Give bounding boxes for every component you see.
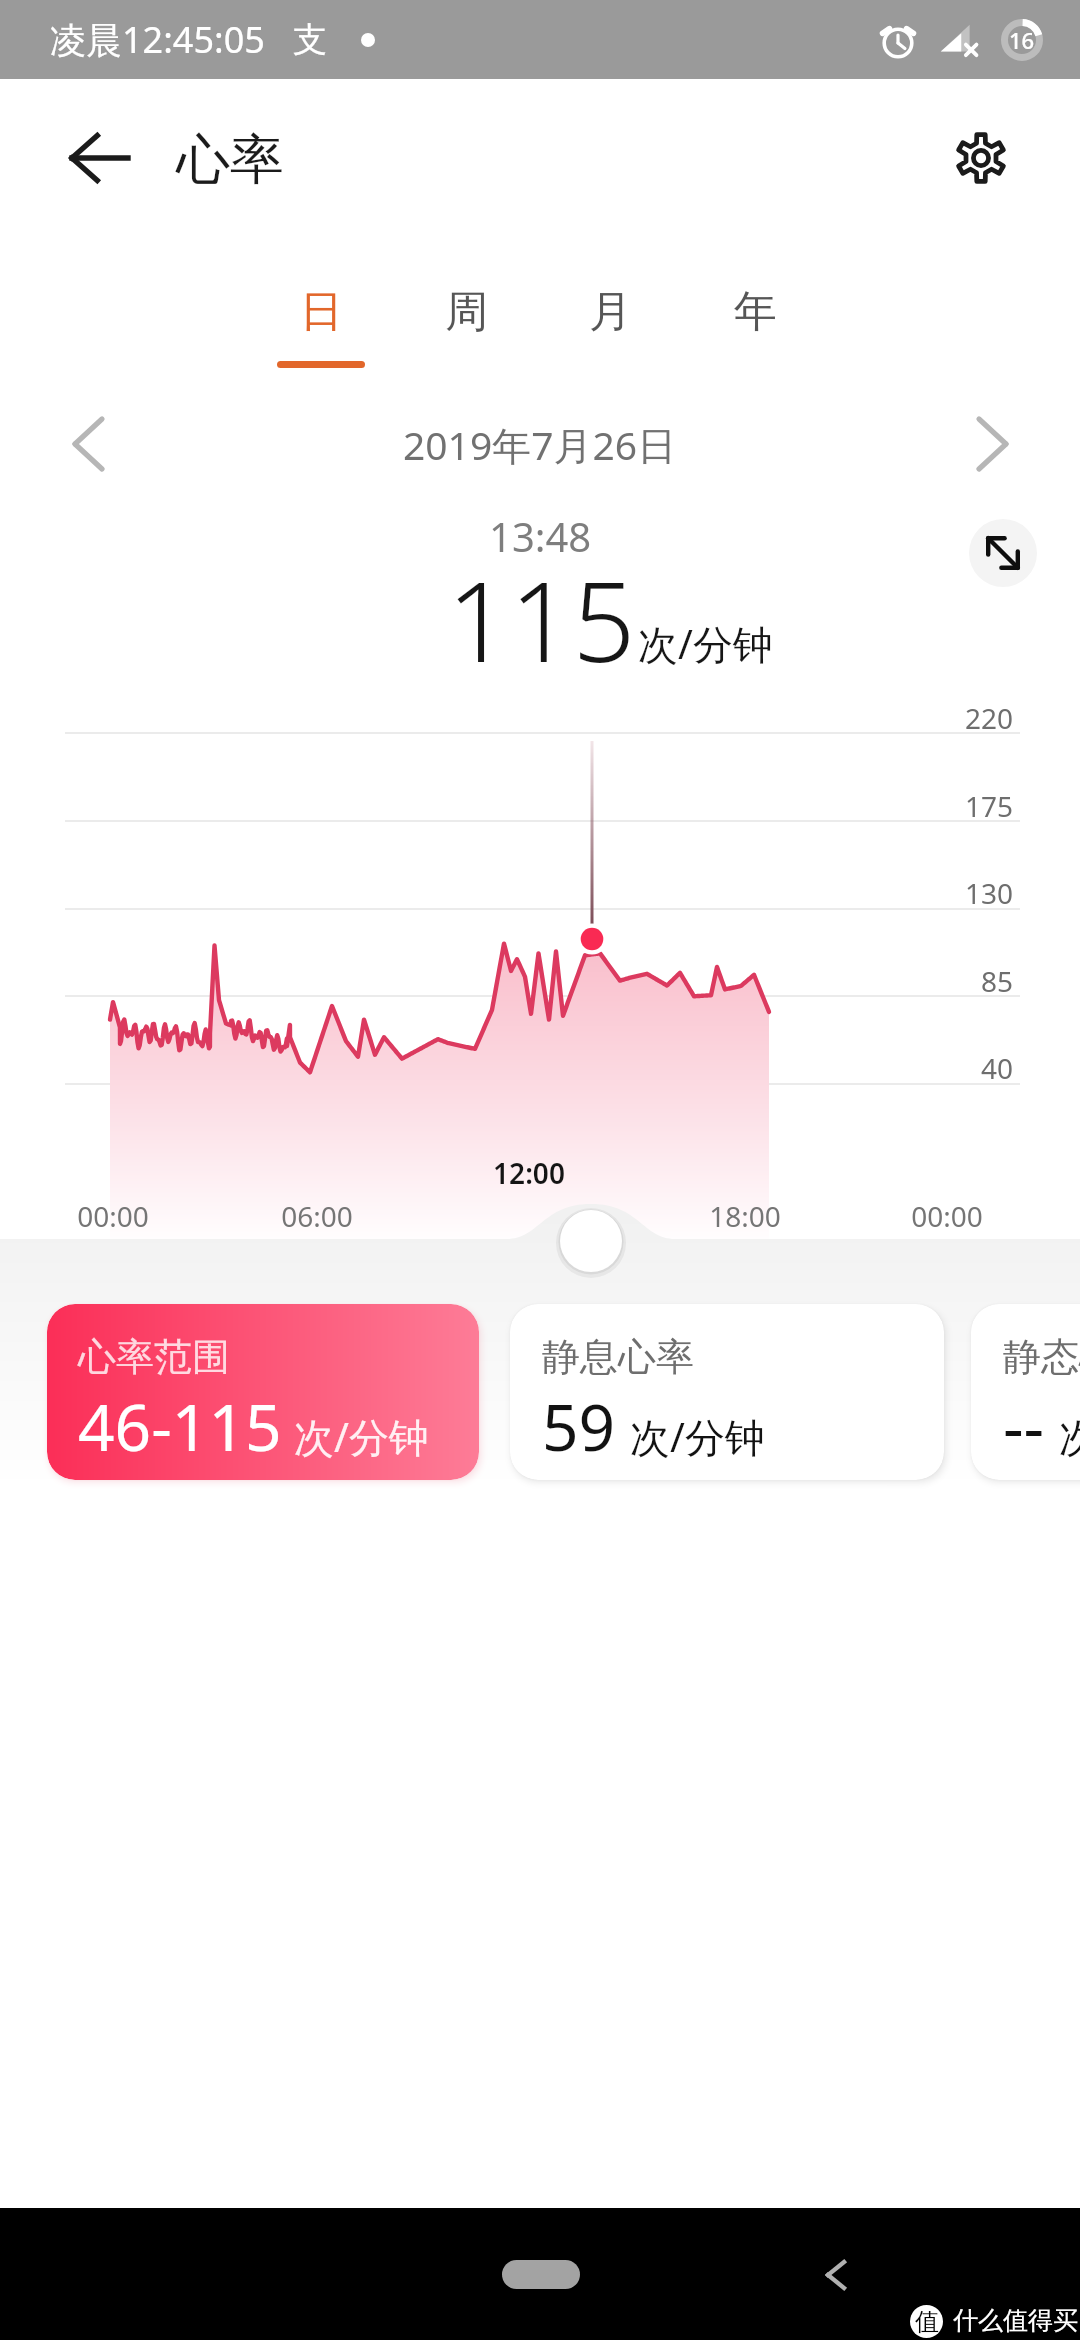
staticText: 静态心率 <box>1003 1333 1080 1381</box>
button[interactable]: Previous day <box>40 396 136 492</box>
button[interactable]: Next day <box>944 396 1040 492</box>
staticText: 00:00 <box>53 1197 173 1235</box>
button[interactable]: Home <box>502 2260 580 2289</box>
button[interactable]: 周 <box>394 285 538 368</box>
staticText: 次/分钟 <box>630 1409 765 1464</box>
button[interactable]: 月 <box>538 285 682 368</box>
staticText: 年 <box>734 285 777 339</box>
staticText: 06:00 <box>257 1197 377 1235</box>
staticText: 次/分钟 <box>1059 1409 1080 1464</box>
button[interactable]: Expand chart <box>969 519 1037 587</box>
staticText: 220 <box>893 699 1013 737</box>
button[interactable]: Back <box>800 2239 872 2311</box>
staticText: 16 <box>1009 25 1035 55</box>
staticText: 心率 <box>176 126 284 194</box>
staticText: 凌晨12:45:05 <box>50 15 265 64</box>
button[interactable]: 年 <box>683 285 827 368</box>
staticText: 115 <box>447 544 636 694</box>
button[interactable]: 心率范围 <box>47 1304 479 1480</box>
staticText: 46-115 <box>78 1383 282 1470</box>
staticText: 支 <box>293 18 327 61</box>
staticText: 40 <box>893 1049 1013 1087</box>
staticText: 日 <box>300 285 343 339</box>
staticText: 130 <box>893 874 1013 912</box>
staticText: 59 <box>542 1383 616 1470</box>
button[interactable]: 静态心率 <box>971 1304 1080 1480</box>
staticText: 周 <box>445 285 488 339</box>
staticText: 85 <box>893 962 1013 1000</box>
staticText: 18:00 <box>685 1197 805 1235</box>
button[interactable]: Back <box>29 93 169 223</box>
staticText: 13:48 <box>489 509 592 563</box>
staticText: 次/分钟 <box>638 616 773 671</box>
button[interactable]: 静息心率 <box>510 1304 944 1480</box>
staticText: 次/分钟 <box>294 1409 429 1464</box>
staticText: 静息心率 <box>542 1333 694 1381</box>
staticText: 月 <box>589 285 632 339</box>
button[interactable]: Settings <box>926 103 1036 213</box>
staticText: -- <box>1003 1383 1045 1470</box>
staticText: 什么值得买 <box>953 2305 1078 2336</box>
staticText: 值 <box>915 2307 939 2337</box>
staticText: 175 <box>893 787 1013 825</box>
staticText: 2019年7月26日 <box>403 418 677 471</box>
button[interactable]: 日 <box>249 285 393 368</box>
staticText: 12:00 <box>469 1154 589 1192</box>
staticText: 心率范围 <box>78 1333 230 1381</box>
staticText: 00:00 <box>887 1197 1007 1235</box>
